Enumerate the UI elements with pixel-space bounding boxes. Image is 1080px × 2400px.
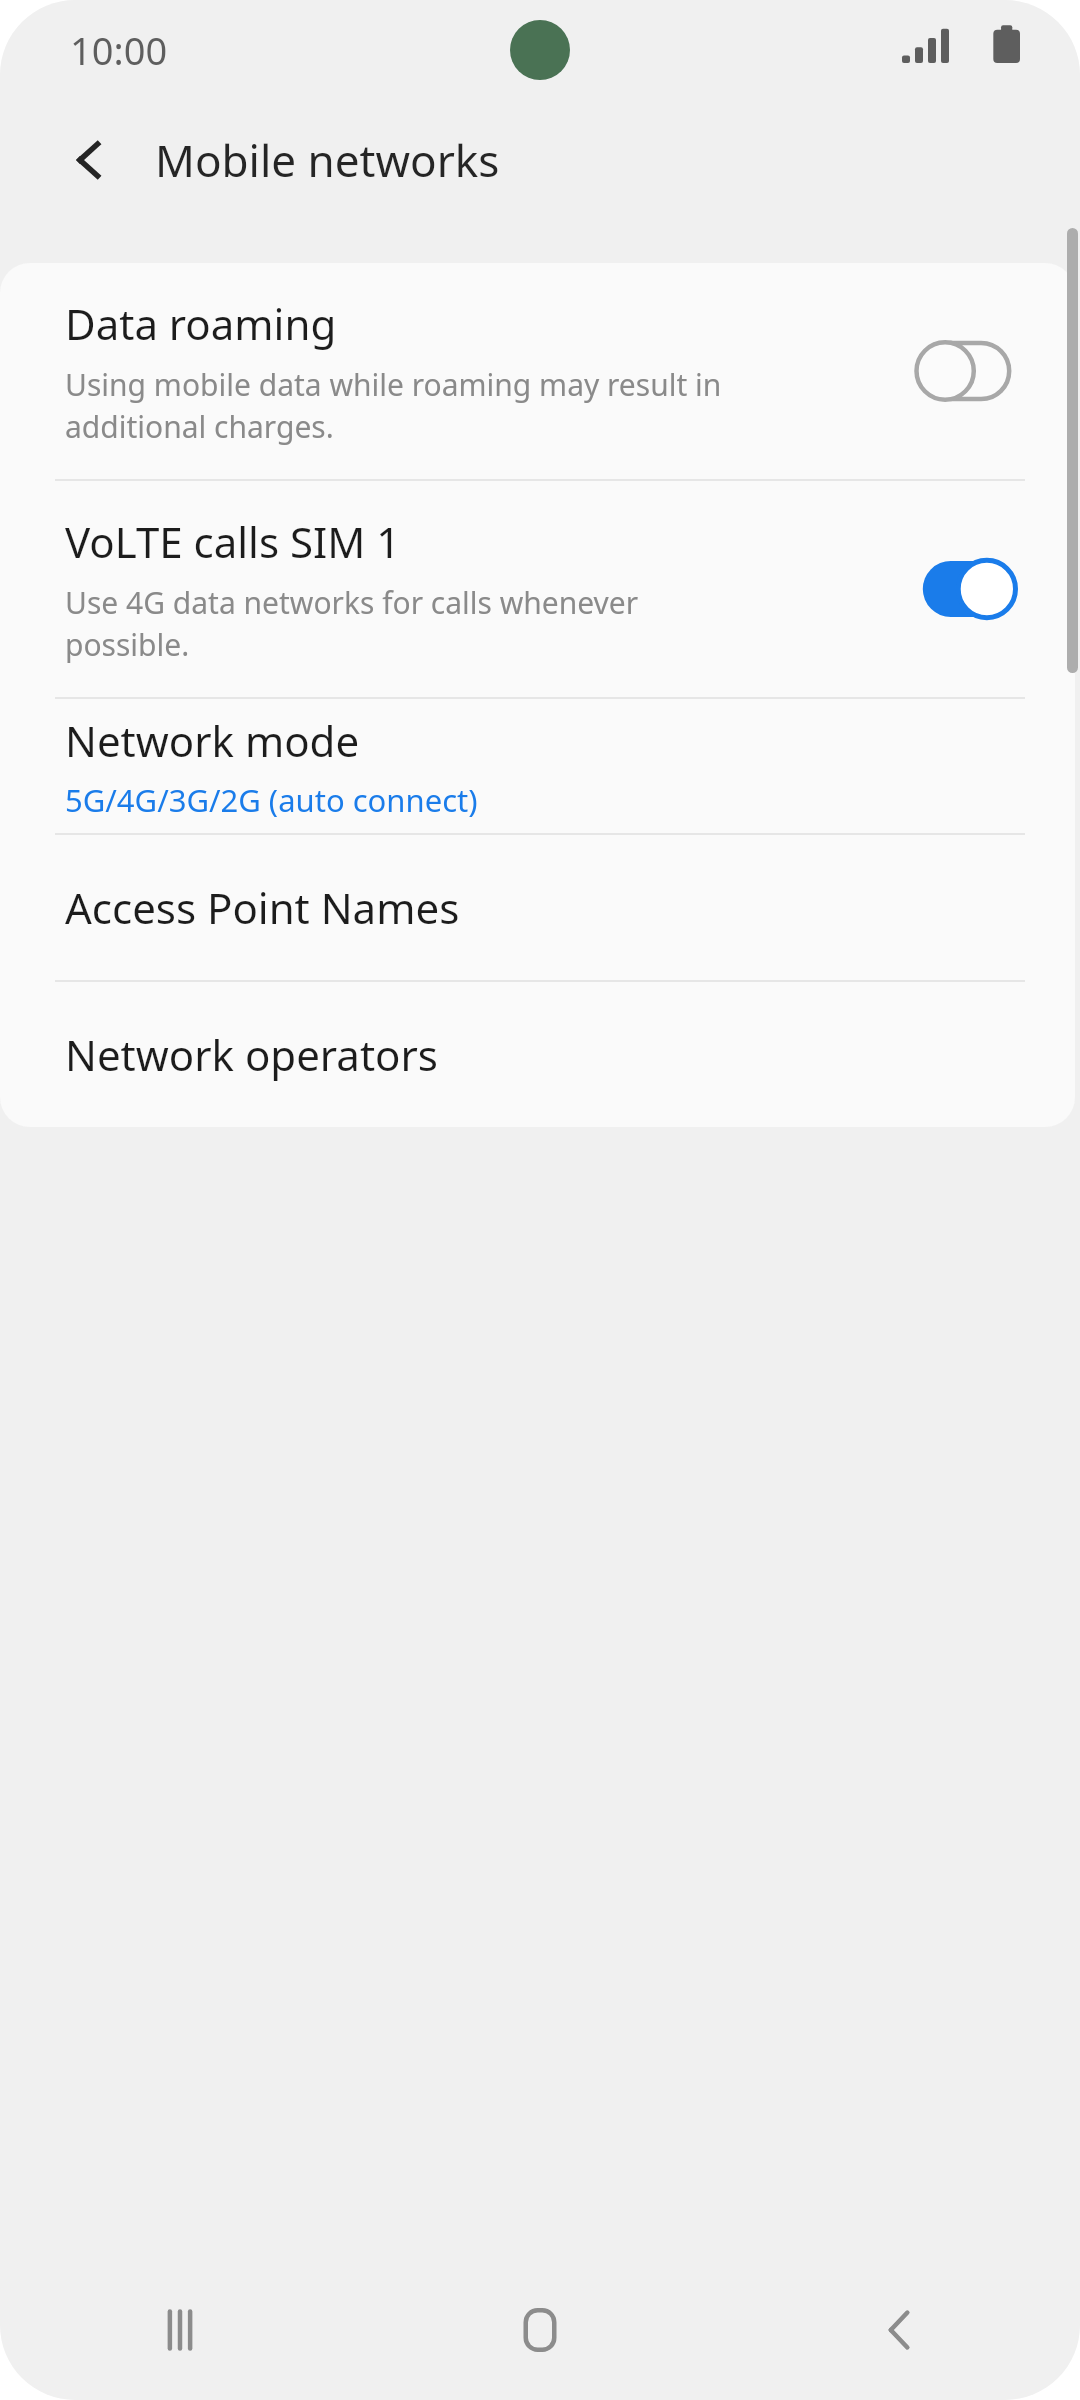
button[interactable]: Home <box>360 2260 720 2400</box>
staticText: Data roaming <box>65 295 337 352</box>
button[interactable]: VoLTE calls SIM 1 <box>0 481 1075 697</box>
staticText: 10:00 <box>70 24 168 76</box>
button[interactable]: Back <box>48 118 132 202</box>
button[interactable]: Network mode <box>0 699 1075 833</box>
staticText: 5G/4G/3G/2G (auto connect) <box>65 779 478 821</box>
staticText: Network mode <box>65 712 360 769</box>
staticText: Use 4G data networks for calls whenever … <box>65 582 639 665</box>
button[interactable]: Off <box>912 335 1020 407</box>
button[interactable]: Data roaming <box>0 263 1075 479</box>
button[interactable]: Recent apps <box>0 2260 360 2400</box>
staticText: VoLTE calls SIM 1 <box>65 513 401 570</box>
staticText: Network operators <box>65 1026 438 1083</box>
button[interactable]: Access Point Names <box>0 835 1075 980</box>
button[interactable]: Back <box>720 2260 1080 2400</box>
button[interactable]: Network operators <box>0 982 1075 1127</box>
staticText: Using mobile data while roaming may resu… <box>65 364 722 447</box>
staticText: Access Point Names <box>65 879 460 936</box>
button[interactable]: On <box>912 553 1020 625</box>
staticText: Mobile networks <box>155 130 500 190</box>
